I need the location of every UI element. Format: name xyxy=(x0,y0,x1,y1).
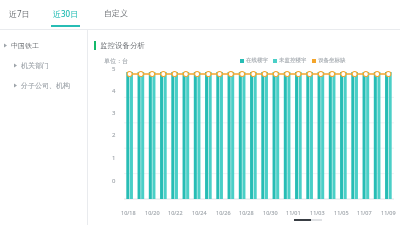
staticText: 机关部门 xyxy=(21,61,49,70)
staticText: 未监控楼宇 xyxy=(279,57,307,64)
button[interactable]: 中国铁工 xyxy=(0,40,87,51)
staticText: 11/01 xyxy=(286,209,301,216)
staticText: 1 xyxy=(112,154,116,162)
staticText: 10/22 xyxy=(168,209,183,216)
staticText: 中国铁工 xyxy=(11,41,39,50)
staticText: 10/20 xyxy=(145,209,160,216)
staticText: 近7日 xyxy=(9,8,30,19)
staticText: 10/18 xyxy=(121,209,136,216)
staticText: 2 xyxy=(112,131,116,139)
staticText: 自定义 xyxy=(104,8,128,18)
button[interactable]: 近30日 xyxy=(51,0,80,29)
staticText: 10/28 xyxy=(239,209,254,216)
staticText: 5 xyxy=(112,65,116,73)
staticText: 分子公司、机构 xyxy=(21,81,70,90)
staticText: 3 xyxy=(112,109,116,117)
staticText: 10/30 xyxy=(263,209,278,216)
staticText: 0 xyxy=(112,177,116,185)
button[interactable]: 在线楼宇 xyxy=(240,57,268,64)
staticText: 在线楼宇 xyxy=(246,57,268,64)
button[interactable]: 未监控楼宇 xyxy=(273,57,307,64)
staticText: 10/24 xyxy=(192,209,207,216)
staticText: 近30日 xyxy=(53,8,79,19)
staticText: 11/09 xyxy=(381,209,396,216)
button[interactable]: 近7日 xyxy=(9,0,30,29)
button[interactable]: 设备坐标缺 xyxy=(312,57,346,64)
staticText: 11/03 xyxy=(310,209,325,216)
staticText: 单位：台 xyxy=(104,57,128,65)
button[interactable]: 分子公司、机构 xyxy=(0,80,87,91)
button[interactable]: 机关部门 xyxy=(0,60,87,71)
staticText: 11/05 xyxy=(334,209,349,216)
staticText: 4 xyxy=(112,87,116,95)
staticText: 11/07 xyxy=(357,209,372,216)
staticText: 监控设备分析 xyxy=(100,41,145,50)
staticText: 设备坐标缺 xyxy=(318,57,346,64)
staticText: 10/26 xyxy=(216,209,231,216)
button[interactable]: 自定义 xyxy=(104,0,128,29)
